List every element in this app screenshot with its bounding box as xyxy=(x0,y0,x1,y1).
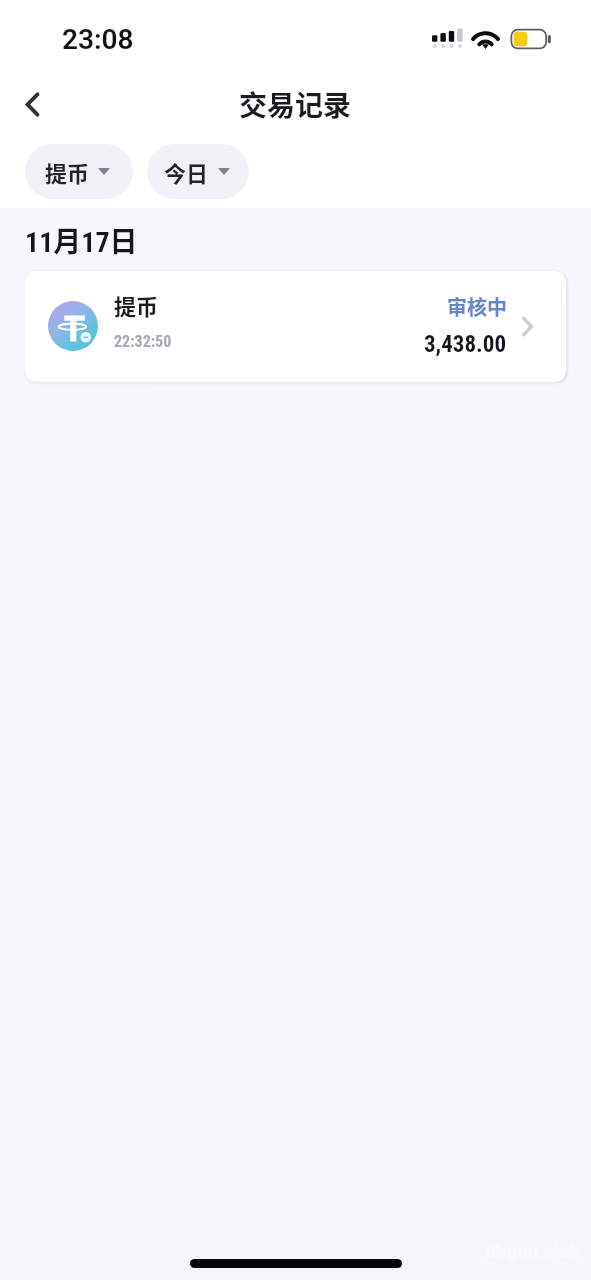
staticText: 11月17日 xyxy=(25,220,138,261)
staticText: 22:32:50 xyxy=(114,332,172,351)
button[interactable]: 今日 xyxy=(147,144,249,199)
button[interactable]: 提币 xyxy=(25,271,566,382)
staticText: 提币 xyxy=(45,156,90,188)
staticText: 3,438.00 xyxy=(424,331,507,358)
staticText: 23:08 xyxy=(62,23,134,56)
staticText: 今日 xyxy=(164,156,209,188)
button[interactable]: Back xyxy=(7,80,55,128)
staticText: 提币 xyxy=(114,289,159,321)
staticText: 审核中 xyxy=(447,292,507,321)
staticText: 交易记录 xyxy=(239,84,352,125)
button[interactable]: 提币 xyxy=(25,144,133,199)
